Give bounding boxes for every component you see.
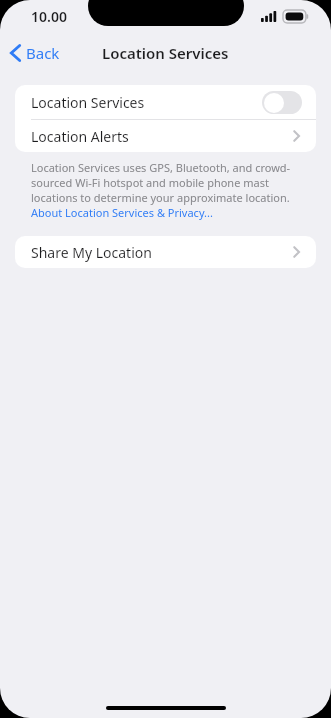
button[interactable]: Location Alerts (15, 120, 316, 152)
button[interactable]: Share My Location (15, 236, 316, 268)
staticText: Back (26, 43, 60, 63)
button[interactable]: Location Services toggle, off (262, 91, 302, 114)
staticText: Location Services (102, 43, 229, 63)
staticText: Location Services (31, 93, 262, 112)
staticText: Share My Location (31, 243, 293, 262)
button[interactable]: Back (0, 33, 70, 73)
staticText: Location Alerts (31, 127, 293, 146)
button[interactable]: Location Services (15, 85, 316, 119)
staticText: 10.00 (31, 7, 67, 26)
staticText: Location Services uses GPS, Bluetooth, a… (31, 160, 300, 220)
